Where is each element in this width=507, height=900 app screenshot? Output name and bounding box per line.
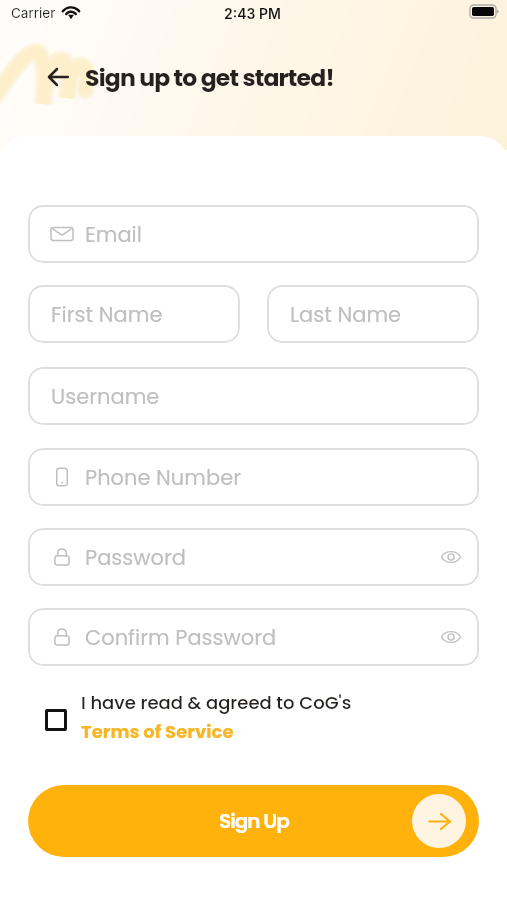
staticText: Password (85, 543, 441, 572)
staticText: I have read & agreed to CoG's (81, 690, 352, 715)
button[interactable]: Back (42, 61, 73, 92)
staticText: Email (85, 220, 461, 249)
staticText: 2:43 PM (224, 5, 281, 22)
staticText: Phone Number (85, 463, 461, 492)
button[interactable]: Username (28, 367, 479, 425)
staticText: Sign Up (219, 807, 289, 835)
button[interactable]: Sign Up (28, 785, 479, 857)
staticText: Last Name (290, 300, 461, 329)
button[interactable]: Phone Number (28, 448, 479, 506)
button[interactable]: Email (28, 205, 479, 263)
button[interactable]: Last Name (267, 285, 479, 343)
button[interactable]: Password (28, 528, 479, 586)
button[interactable]: I have read & agreed to CoG's (28, 690, 479, 744)
staticText: Sign up to get started! (85, 61, 334, 94)
staticText: Terms of Service (81, 719, 234, 744)
button[interactable]: Confirm Password (28, 608, 479, 666)
staticText: First Name (51, 300, 222, 329)
other: Continue (412, 794, 466, 848)
staticText: Carrier (11, 5, 56, 21)
staticText: Username (51, 382, 461, 411)
button[interactable]: First Name (28, 285, 240, 343)
staticText: Confirm Password (85, 623, 441, 652)
